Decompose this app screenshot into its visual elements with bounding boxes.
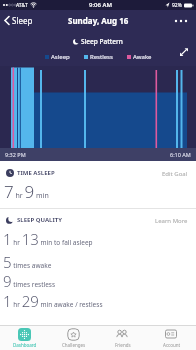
staticText: Dashboard bbox=[13, 342, 37, 348]
staticText: Restless bbox=[90, 53, 113, 61]
button[interactable]: SLEEP QUALITY bbox=[6, 216, 62, 224]
button[interactable]: Friends bbox=[98, 326, 147, 350]
staticText: 1 hr 13 min to fall asleep bbox=[3, 229, 93, 249]
staticText: Sunday, Aug 16 bbox=[68, 15, 129, 26]
staticText: Friends bbox=[115, 342, 131, 348]
button[interactable]: Account bbox=[147, 326, 196, 350]
button[interactable]: Dashboard bbox=[0, 326, 49, 350]
button[interactable]: TIME ASLEEP bbox=[6, 169, 55, 177]
staticText: Sleep bbox=[12, 15, 33, 26]
staticText: 1 hr 29 min awake / restless bbox=[3, 291, 103, 311]
staticText: Asleep bbox=[51, 53, 70, 61]
staticText: 92% bbox=[172, 2, 182, 9]
staticText: TIME ASLEEP bbox=[17, 169, 55, 177]
staticText: Awake bbox=[133, 53, 152, 61]
button[interactable] bbox=[179, 47, 189, 57]
staticText: 9 times restless bbox=[3, 271, 56, 291]
staticText: 9:06 AM bbox=[89, 1, 112, 9]
button[interactable]: Sleep bbox=[4, 15, 33, 26]
staticText: SLEEP QUALITY bbox=[17, 216, 62, 224]
staticText: 5 times awake bbox=[3, 252, 52, 272]
staticText: AT&T bbox=[16, 2, 28, 9]
staticText: 6:10 AM bbox=[170, 151, 191, 158]
button[interactable]: Challenges bbox=[49, 326, 98, 350]
button[interactable] bbox=[174, 19, 188, 23]
staticText: 9:32 PM bbox=[5, 151, 26, 158]
staticText: Challenges bbox=[62, 342, 86, 348]
staticText: 7 hr 9 min bbox=[4, 180, 49, 203]
button[interactable]: Learn More bbox=[155, 217, 188, 225]
staticText: Sleep Pattern bbox=[81, 37, 123, 46]
staticText: Account bbox=[163, 342, 181, 348]
button[interactable]: Edit Goal bbox=[162, 170, 188, 178]
